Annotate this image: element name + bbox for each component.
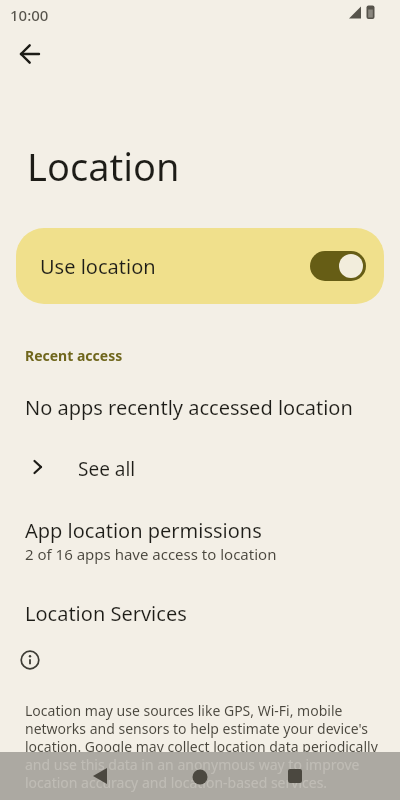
button[interactable] [6, 30, 54, 78]
button[interactable] [176, 752, 224, 800]
staticText: networks and sensors to help estimate yo… [25, 719, 368, 738]
staticText: and use this data in an anonymous way to… [25, 755, 360, 774]
staticText: location accuracy and location-based ser… [25, 773, 328, 792]
staticText: location. Google may collect location da… [25, 737, 378, 756]
staticText: Location Services [25, 600, 187, 627]
button[interactable]: Location Services [0, 588, 400, 636]
staticText: Location may use sources like GPS, Wi-Fi… [25, 701, 343, 720]
button[interactable]: See all [0, 443, 400, 491]
staticText: Location [27, 140, 180, 192]
button[interactable]: App location permissions [0, 506, 400, 568]
staticText: Use location [40, 253, 156, 280]
staticText: No apps recently accessed location [25, 394, 353, 421]
staticText: App location permissions [25, 517, 262, 544]
button[interactable] [76, 752, 124, 800]
button[interactable] [271, 752, 319, 800]
staticText: Recent access [25, 346, 123, 365]
staticText: 10:00 [10, 5, 49, 25]
staticText: See all [78, 456, 136, 482]
button[interactable]: Use location [16, 228, 384, 304]
staticText: 2 of 16 apps have access to location [25, 544, 277, 564]
